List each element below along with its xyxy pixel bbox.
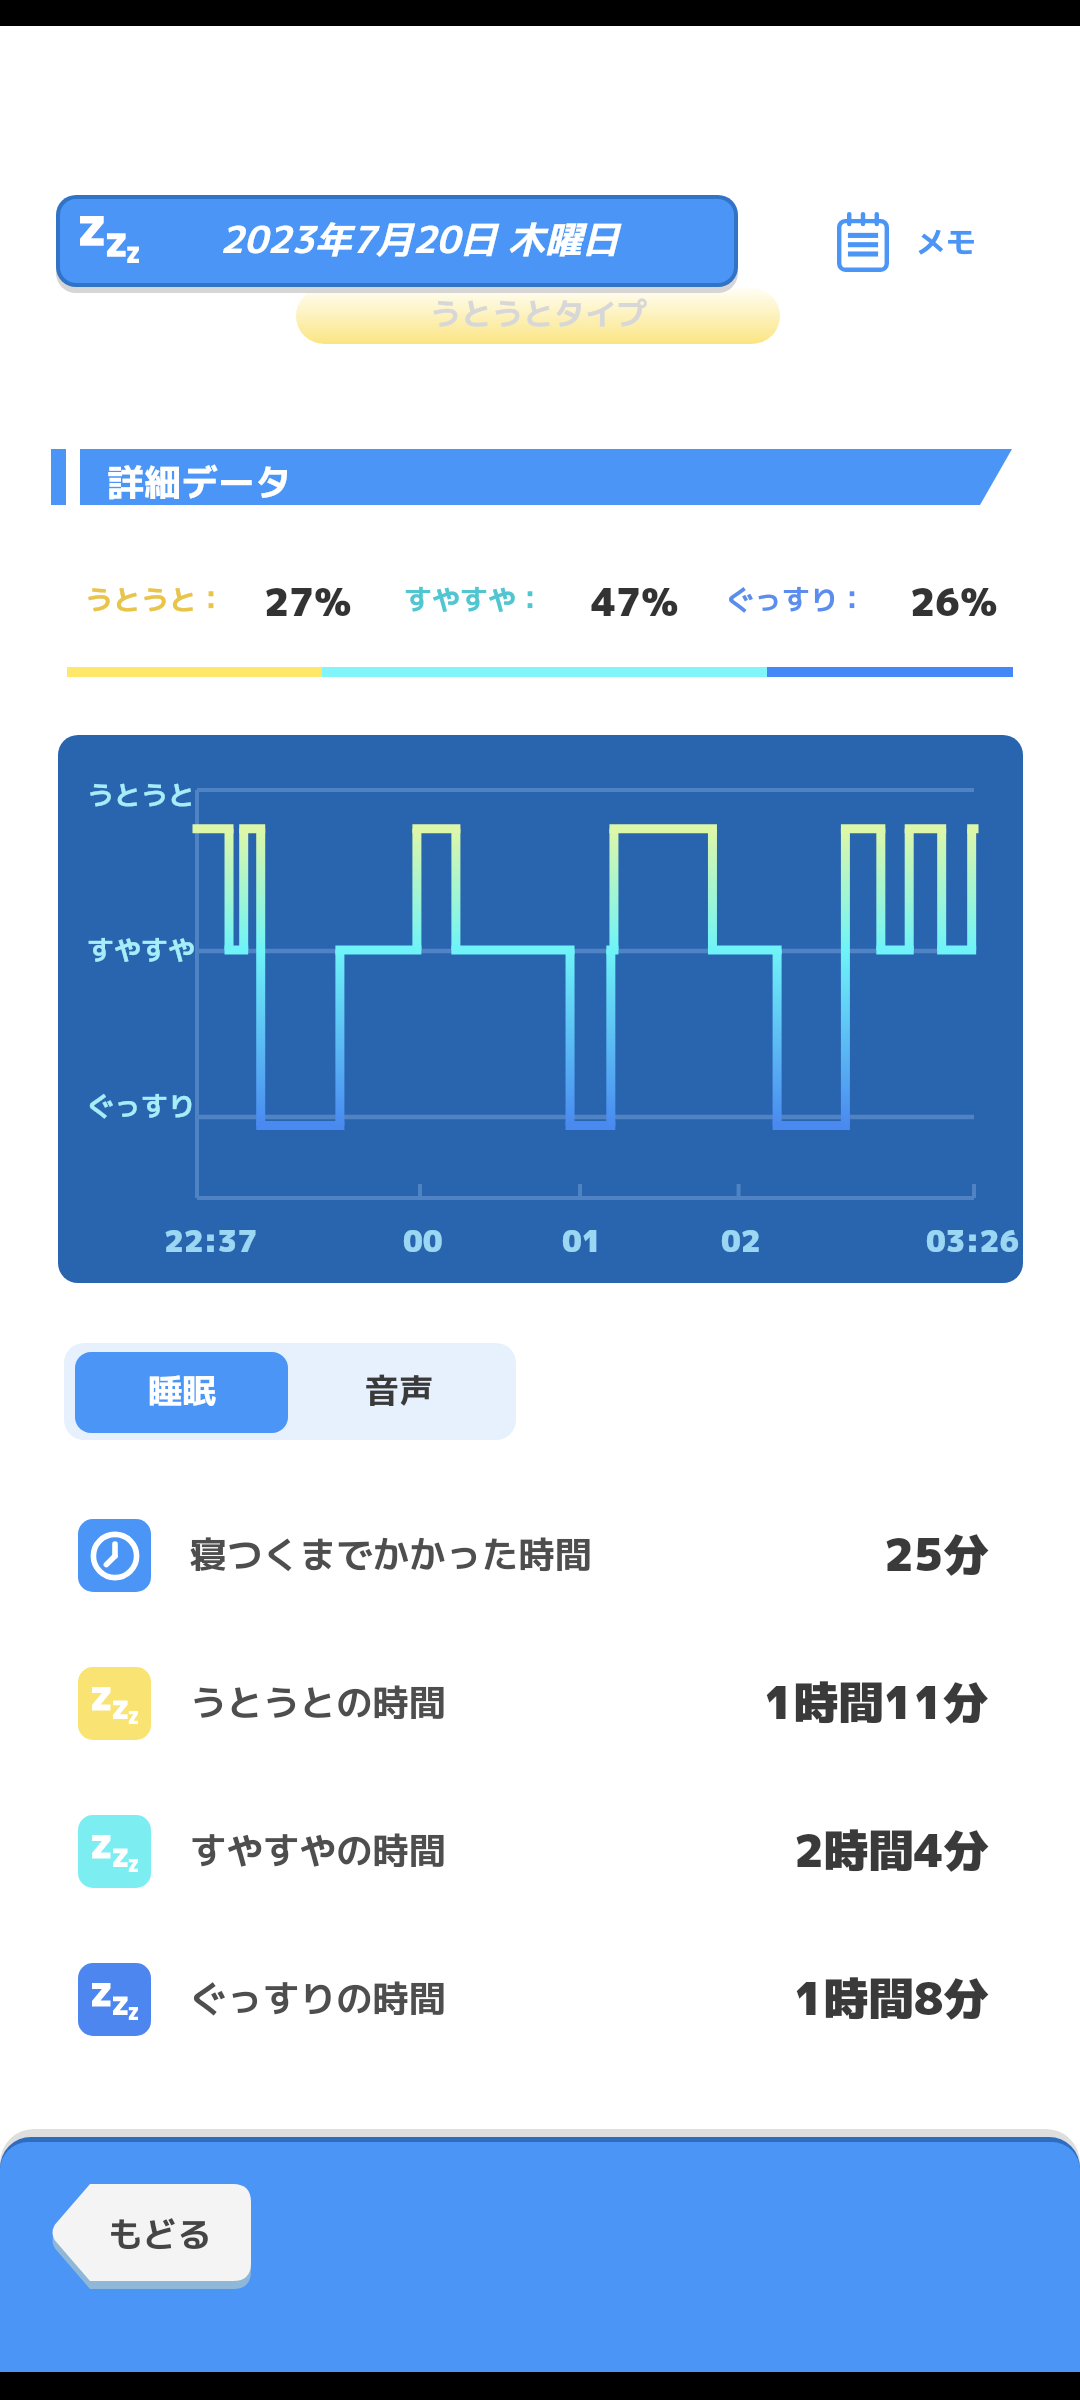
staticText: 26% — [910, 575, 998, 619]
button[interactable]: 寝つくまでかかった時間 — [78, 1519, 990, 1592]
staticText: 音声 — [365, 1366, 433, 1413]
staticText: 47% — [591, 575, 679, 619]
staticText: 1時間11分 — [764, 1671, 989, 1734]
staticText: 1時間8分 — [794, 1967, 989, 2030]
staticText: うとうと： — [85, 580, 226, 619]
staticText: 25分 — [884, 1523, 989, 1586]
staticText: ぐっすり： — [726, 580, 867, 619]
button[interactable]: 音声 — [292, 1352, 505, 1433]
staticText: 睡眠 — [148, 1366, 216, 1413]
staticText: すやすや — [87, 931, 195, 969]
staticText: すやすやの時間 — [190, 1825, 446, 1876]
button[interactable]: 2023年7月20日 木曜日 — [56, 195, 738, 287]
button[interactable]: すやすやの時間 — [78, 1815, 990, 1888]
staticText: 03:26 — [926, 1220, 1020, 1262]
button[interactable]: うとうとの時間 — [78, 1667, 990, 1740]
button[interactable]: もどる — [50, 2184, 260, 2292]
staticText: 00 — [403, 1220, 443, 1262]
staticText: 寝つくまでかかった時間 — [190, 1529, 592, 1580]
staticText: 02 — [721, 1220, 761, 1262]
staticText: 01 — [562, 1220, 602, 1262]
staticText: ぐっすりの時間 — [190, 1973, 446, 2024]
other: メモ — [837, 212, 889, 272]
staticText: 詳細データ — [107, 456, 292, 508]
staticText: 2023年7月20日 木曜日 — [220, 213, 620, 265]
staticText: 27% — [264, 575, 352, 619]
staticText: ぐっすり — [87, 1087, 195, 1125]
staticText: すやすや： — [404, 580, 545, 619]
staticText: うとうとの時間 — [190, 1677, 446, 1728]
button[interactable]: 睡眠 — [75, 1352, 288, 1433]
button[interactable]: ぐっすりの時間 — [78, 1963, 990, 2036]
staticText: メモ — [916, 221, 976, 263]
staticText: うとうと — [87, 776, 195, 814]
staticText: うとうとタイプ — [430, 292, 647, 335]
staticText: もどる — [108, 2210, 212, 2258]
staticText: 2時間4分 — [794, 1819, 989, 1882]
button[interactable]: メモ — [825, 196, 988, 288]
staticText: 22:37 — [164, 1220, 258, 1262]
